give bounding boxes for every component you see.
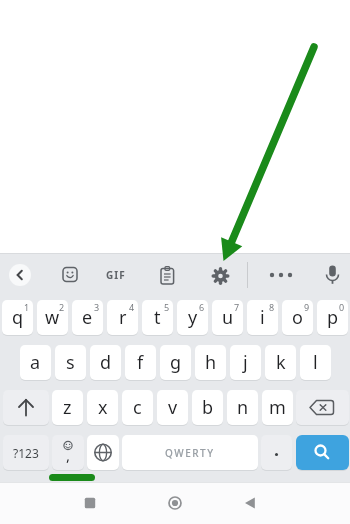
button[interactable]: k bbox=[265, 345, 296, 380]
staticText: f bbox=[137, 350, 144, 375]
button[interactable]: ?123 bbox=[3, 435, 49, 470]
staticText: y bbox=[188, 305, 198, 330]
staticText: q bbox=[12, 305, 24, 330]
staticText: v bbox=[168, 395, 178, 420]
button[interactable] bbox=[263, 266, 299, 284]
staticText: GIF bbox=[106, 268, 126, 282]
staticText: 7 bbox=[234, 301, 240, 313]
button[interactable]: n bbox=[227, 390, 258, 425]
button[interactable] bbox=[9, 264, 31, 286]
staticText: QWERTY bbox=[165, 446, 215, 460]
staticText: z bbox=[63, 395, 72, 420]
staticText: a bbox=[30, 350, 41, 375]
staticText: m bbox=[269, 395, 286, 420]
button[interactable]: r bbox=[107, 300, 138, 335]
staticText: u bbox=[222, 305, 234, 330]
staticText: 4 bbox=[129, 301, 135, 313]
button[interactable] bbox=[3, 390, 49, 425]
staticText: g bbox=[170, 350, 182, 375]
button[interactable]: b bbox=[192, 390, 223, 425]
button[interactable]: j bbox=[230, 345, 261, 380]
staticText: t bbox=[154, 305, 161, 330]
button[interactable]: e bbox=[72, 300, 103, 335]
staticText: 9 bbox=[304, 301, 310, 313]
staticText: l bbox=[313, 350, 318, 375]
button[interactable]: , bbox=[52, 435, 84, 470]
staticText: 8 bbox=[269, 301, 275, 313]
button[interactable]: i bbox=[247, 300, 278, 335]
staticText: 3 bbox=[94, 301, 100, 313]
button[interactable]: c bbox=[122, 390, 153, 425]
button[interactable]: h bbox=[195, 345, 226, 380]
staticText: j bbox=[243, 350, 248, 375]
button[interactable] bbox=[296, 435, 349, 470]
button[interactable] bbox=[244, 497, 256, 509]
staticText: 1 bbox=[24, 301, 30, 313]
button[interactable]: d bbox=[90, 345, 121, 380]
button[interactable]: q bbox=[2, 300, 33, 335]
button[interactable]: p bbox=[317, 300, 348, 335]
button[interactable] bbox=[84, 497, 96, 509]
button[interactable] bbox=[62, 266, 79, 283]
button[interactable] bbox=[324, 264, 341, 286]
staticText: , bbox=[66, 445, 71, 465]
staticText: h bbox=[205, 350, 217, 375]
button[interactable]: s bbox=[55, 345, 86, 380]
staticText: ?123 bbox=[13, 445, 39, 461]
staticText: 5 bbox=[164, 301, 170, 313]
staticText: b bbox=[202, 395, 214, 420]
staticText: i bbox=[260, 305, 265, 330]
staticText: c bbox=[133, 395, 142, 420]
staticText: 6 bbox=[199, 301, 205, 313]
staticText: n bbox=[237, 395, 249, 420]
button[interactable]: x bbox=[87, 390, 118, 425]
button[interactable]: f bbox=[125, 345, 156, 380]
button[interactable]: z bbox=[52, 390, 83, 425]
button[interactable]: v bbox=[157, 390, 188, 425]
button[interactable]: a bbox=[20, 345, 51, 380]
staticText: w bbox=[45, 305, 60, 330]
button[interactable]: QWERTY bbox=[122, 435, 258, 470]
staticText: k bbox=[276, 350, 286, 375]
button[interactable]: w bbox=[37, 300, 68, 335]
button[interactable] bbox=[261, 435, 292, 470]
button[interactable]: g bbox=[160, 345, 191, 380]
staticText: r bbox=[119, 305, 127, 330]
button[interactable]: GIF bbox=[106, 268, 126, 282]
button[interactable]: t bbox=[142, 300, 173, 335]
staticText: x bbox=[98, 395, 108, 420]
button[interactable] bbox=[87, 435, 119, 470]
staticText: e bbox=[82, 305, 93, 330]
button[interactable]: m bbox=[262, 390, 293, 425]
button[interactable] bbox=[211, 267, 230, 286]
staticText: o bbox=[292, 305, 303, 330]
button[interactable] bbox=[168, 496, 182, 510]
button[interactable]: o bbox=[282, 300, 313, 335]
button[interactable] bbox=[296, 390, 349, 425]
staticText: 0 bbox=[339, 301, 345, 313]
button[interactable] bbox=[160, 266, 175, 285]
staticText: 2 bbox=[59, 301, 65, 313]
button[interactable]: y bbox=[177, 300, 208, 335]
staticText: s bbox=[66, 350, 75, 375]
button[interactable]: l bbox=[300, 345, 331, 380]
staticText: d bbox=[100, 350, 112, 375]
staticText: p bbox=[327, 305, 339, 330]
button[interactable]: u bbox=[212, 300, 243, 335]
